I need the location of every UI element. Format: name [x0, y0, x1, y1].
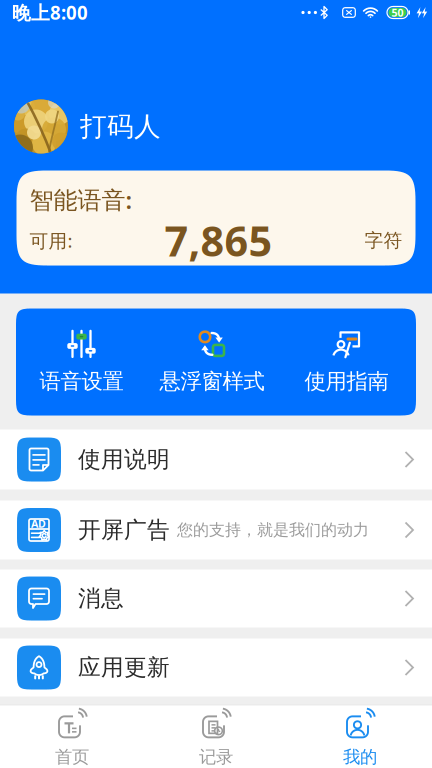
- button[interactable]: 使用指南: [277, 312, 416, 411]
- staticText: 您的支持，就是我们的动力: [177, 520, 369, 540]
- staticText: 应用更新: [78, 654, 170, 681]
- staticText: 记录: [199, 746, 233, 768]
- button[interactable]: 消息: [0, 569, 432, 627]
- staticText: 悬浮窗样式: [159, 368, 264, 395]
- staticText: 打码人: [80, 110, 161, 143]
- staticText: 语音设置: [39, 368, 123, 395]
- button[interactable]: 悬浮窗样式: [147, 312, 277, 411]
- staticText: 首页: [55, 746, 89, 768]
- staticText: 使用指南: [304, 368, 388, 395]
- button[interactable]: 记录: [144, 705, 288, 768]
- staticText: 使用说明: [78, 446, 170, 473]
- staticText: 开屏广告: [78, 516, 170, 544]
- staticText: 可用:: [29, 228, 72, 253]
- staticText: 7,865: [164, 213, 272, 268]
- button[interactable]: 我的: [288, 705, 432, 768]
- button[interactable]: 使用说明: [0, 429, 432, 489]
- button[interactable]: 首页: [0, 705, 144, 768]
- button[interactable]: 应用更新: [0, 638, 432, 696]
- staticText: 智能语音:: [29, 184, 132, 215]
- staticText: 50: [391, 5, 403, 20]
- staticText: 消息: [78, 585, 124, 612]
- staticText: 字符: [364, 229, 402, 252]
- button[interactable]: 打码人: [0, 99, 432, 153]
- button[interactable]: 语音设置: [16, 312, 147, 411]
- button[interactable]: AD: [0, 500, 432, 559]
- staticText: AD: [31, 516, 46, 531]
- staticText: 晚上8:00: [12, 0, 88, 25]
- staticText: 我的: [343, 746, 377, 768]
